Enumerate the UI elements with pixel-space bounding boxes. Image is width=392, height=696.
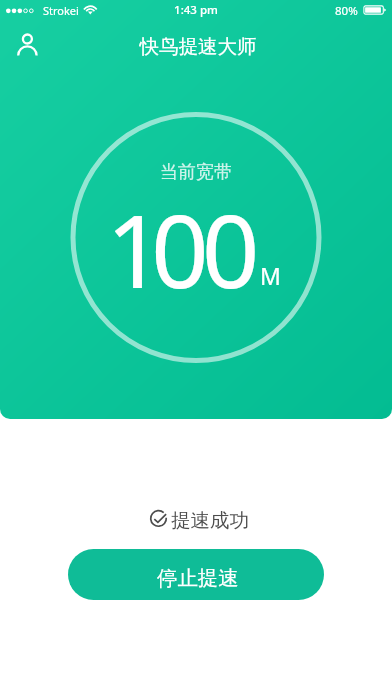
- staticText: 80%: [335, 3, 358, 19]
- staticText: 提速成功: [171, 508, 249, 533]
- staticText: 当前宽带: [0, 161, 392, 184]
- staticText: 快鸟提速大师: [2, 34, 392, 59]
- staticText: Strokei: [43, 3, 79, 18]
- staticText: 00: [151, 180, 253, 318]
- staticText: 1: [106, 180, 164, 318]
- staticText: M: [260, 260, 281, 291]
- staticText: 停止提速: [157, 565, 239, 591]
- button[interactable]: 停止提速: [68, 549, 324, 600]
- staticText: 1:43 pm: [0, 2, 392, 18]
- button[interactable]: Account: [8, 27, 48, 67]
